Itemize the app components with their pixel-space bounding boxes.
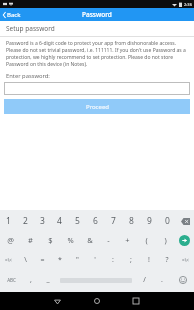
staticText: ( [145, 235, 148, 245]
button[interactable]: Back [38, 292, 77, 310]
staticText: : [112, 255, 114, 265]
button[interactable]: =\< [176, 250, 194, 270]
button[interactable]: ' [86, 250, 104, 270]
button[interactable]: Emoji [171, 270, 194, 290]
staticText: _ [46, 275, 50, 285]
button[interactable] [4, 82, 190, 95]
button[interactable]: = [34, 250, 51, 270]
button[interactable]: 3 [34, 212, 51, 230]
button[interactable]: _ [39, 270, 57, 290]
staticText: = [40, 255, 45, 265]
button[interactable]: Enter [175, 230, 194, 250]
button[interactable]: Proceed [4, 99, 190, 114]
staticText: Back [7, 11, 21, 19]
button[interactable]: Recents [116, 292, 155, 310]
staticText: ABC [7, 277, 16, 283]
staticText: ; [130, 255, 132, 265]
staticText: 1 [6, 215, 11, 227]
staticText: 0 [165, 215, 170, 227]
staticText: , [30, 275, 32, 285]
staticText: % [67, 235, 74, 245]
button[interactable]: * [51, 250, 68, 270]
staticText: + [125, 235, 130, 245]
button[interactable]: . [153, 270, 171, 290]
staticText: / [143, 275, 146, 285]
button[interactable]: & [80, 230, 99, 250]
button[interactable]: ) [156, 230, 175, 250]
staticText: * [58, 255, 62, 265]
button[interactable]: ; [122, 250, 140, 270]
staticText: ) [164, 235, 167, 245]
button[interactable]: =\< [0, 250, 17, 270]
button[interactable]: - [99, 230, 118, 250]
staticText: Proceed [86, 103, 109, 111]
button[interactable]: 6 [86, 212, 104, 230]
button[interactable]: 8 [122, 212, 140, 230]
staticText: . [161, 275, 163, 285]
staticText: =\< [182, 257, 189, 263]
staticText: " [76, 255, 79, 265]
button[interactable]: $ [40, 230, 60, 250]
button[interactable]: ABC [0, 270, 22, 290]
staticText: 8 [129, 215, 134, 227]
button[interactable]: 0 [158, 212, 176, 230]
button[interactable]: ( [137, 230, 156, 250]
button[interactable]: Space [57, 270, 135, 290]
staticText: ! [148, 255, 150, 265]
staticText: $ [48, 235, 53, 245]
button[interactable]: ! [140, 250, 158, 270]
button[interactable]: : [104, 250, 122, 270]
staticText: 2:36 [184, 2, 192, 7]
staticText: Password is a 6-digit code to protect yo… [6, 40, 188, 68]
staticText: Setup password [6, 24, 55, 33]
staticText: =\< [5, 257, 12, 263]
button[interactable]: Back [0, 9, 24, 21]
staticText: ? [165, 255, 169, 265]
staticText: # [28, 235, 33, 245]
staticText: 3 [40, 215, 45, 227]
staticText: 6 [93, 215, 98, 227]
button[interactable]: % [60, 230, 80, 250]
staticText: - [107, 235, 110, 245]
button[interactable]: 2 [17, 212, 34, 230]
staticText: & [87, 235, 93, 245]
button[interactable]: , [22, 270, 39, 290]
button[interactable]: / [135, 270, 153, 290]
staticText: Enter password: [6, 72, 50, 80]
button[interactable]: + [118, 230, 137, 250]
staticText: 5 [75, 215, 80, 227]
staticText: 7 [111, 215, 116, 227]
staticText: 9 [147, 215, 152, 227]
staticText: ' [94, 255, 96, 265]
staticText: 4 [57, 215, 62, 227]
button[interactable]: Backspace [176, 212, 194, 230]
button[interactable]: 1 [0, 212, 17, 230]
button[interactable]: 4 [51, 212, 68, 230]
staticText: @ [7, 235, 14, 245]
button[interactable]: \ [17, 250, 34, 270]
staticText: 2 [23, 215, 28, 227]
button[interactable]: # [20, 230, 40, 250]
button[interactable]: 9 [140, 212, 158, 230]
button[interactable]: " [68, 250, 86, 270]
button[interactable]: @ [0, 230, 20, 250]
staticText: \ [24, 255, 27, 265]
button[interactable]: Home [77, 292, 116, 310]
staticText: Password [82, 10, 112, 19]
button[interactable]: ? [158, 250, 176, 270]
button[interactable]: 5 [68, 212, 86, 230]
button[interactable]: 7 [104, 212, 122, 230]
